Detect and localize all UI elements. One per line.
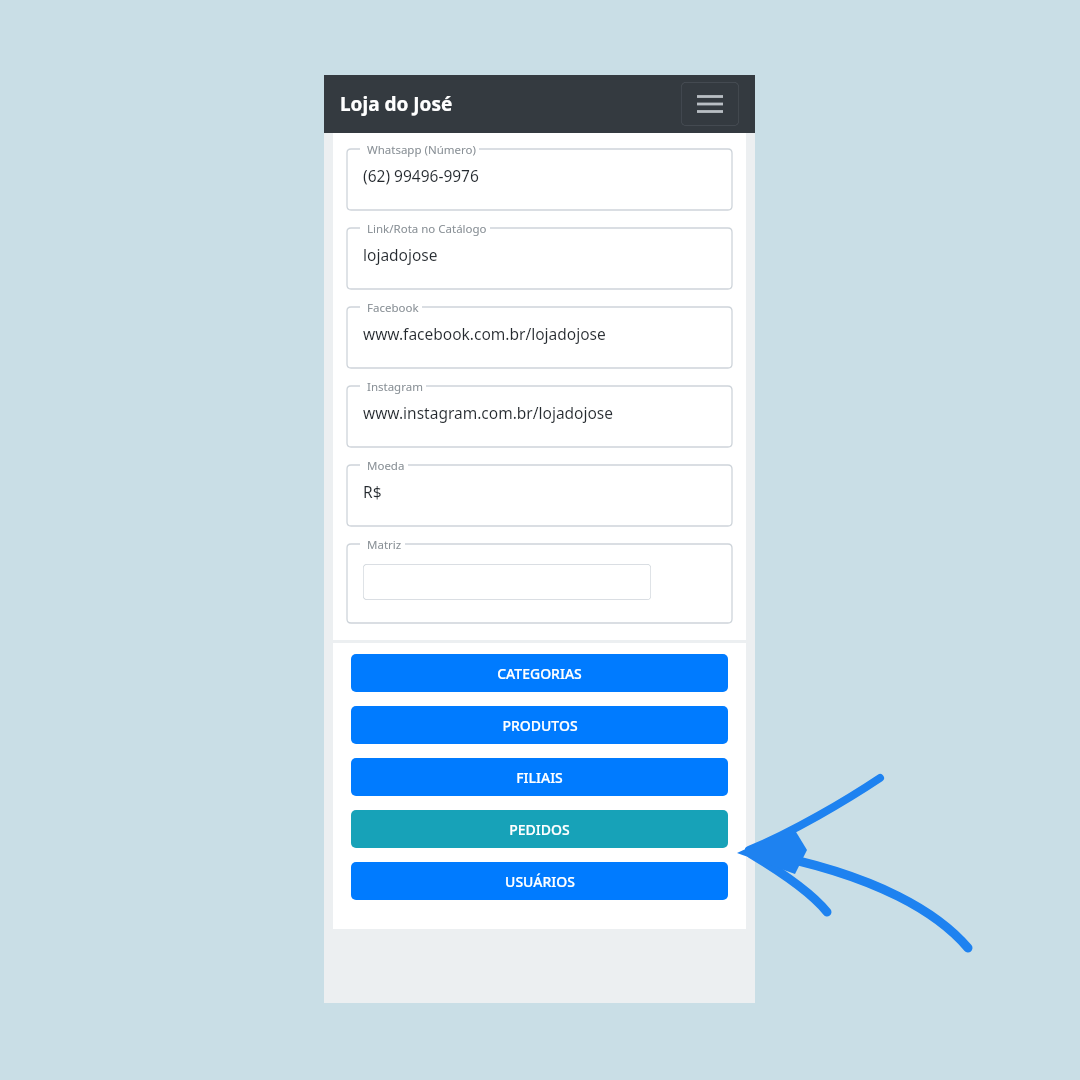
staticText: FILIAIS (516, 768, 563, 787)
staticText: (62) 99496-9976 (363, 165, 479, 186)
staticText: www.instagram.com.br/lojadojose (363, 402, 614, 423)
button[interactable]: FILIAIS (351, 758, 728, 796)
button[interactable]: USUÁRIOS (351, 862, 728, 900)
staticText: Whatsapp (Número) (367, 142, 476, 158)
staticText: Link/Rota no Catálogo (367, 221, 487, 237)
staticText: CATEGORIAS (497, 664, 582, 683)
button[interactable]: Menu (681, 82, 739, 126)
staticText: Instagram (367, 379, 423, 395)
button[interactable]: Moeda (347, 456, 732, 526)
staticText: Loja do José (340, 91, 453, 117)
button[interactable]: Instagram (347, 377, 732, 447)
button[interactable]: Link/Rota no Catálogo (347, 219, 732, 289)
staticText: Moeda (367, 458, 405, 474)
staticText: R$ (363, 481, 382, 502)
staticText: lojadojose (363, 244, 438, 265)
button[interactable]: PEDIDOS (351, 810, 728, 848)
button[interactable]: Matriz (347, 535, 732, 623)
button[interactable]: CATEGORIAS (351, 654, 728, 692)
button[interactable]: Matriz input (363, 564, 651, 600)
button[interactable]: Whatsapp (Número) (347, 140, 732, 210)
staticText: www.facebook.com.br/lojadojose (363, 323, 606, 344)
button[interactable]: PRODUTOS (351, 706, 728, 744)
staticText: Matriz (367, 537, 402, 553)
staticText: USUÁRIOS (505, 872, 575, 891)
staticText: PEDIDOS (509, 820, 570, 839)
staticText: Facebook (367, 300, 419, 316)
button[interactable]: Facebook (347, 298, 732, 368)
staticText: PRODUTOS (502, 716, 578, 735)
